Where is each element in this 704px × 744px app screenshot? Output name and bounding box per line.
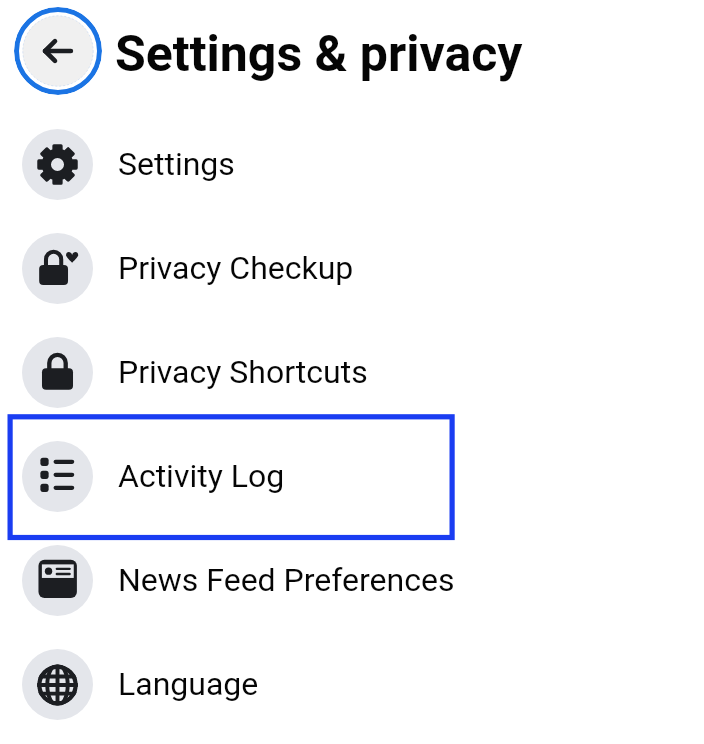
button[interactable]: Privacy Checkup — [0, 216, 704, 320]
button[interactable]: Back — [14, 7, 102, 95]
button[interactable]: Privacy Shortcuts — [0, 320, 704, 424]
button[interactable]: News Feed Preferences — [0, 528, 704, 632]
staticText: Settings & privacy — [115, 25, 523, 84]
staticText: Activity Log — [118, 457, 285, 495]
staticText: Language — [118, 665, 259, 703]
button[interactable]: Settings — [0, 112, 704, 216]
staticText: Privacy Checkup — [118, 249, 354, 287]
staticText: Settings — [118, 145, 235, 183]
button[interactable]: Activity Log — [0, 424, 704, 528]
staticText: Privacy Shortcuts — [118, 353, 368, 391]
button[interactable]: Language — [0, 632, 704, 736]
staticText: News Feed Preferences — [118, 561, 455, 599]
